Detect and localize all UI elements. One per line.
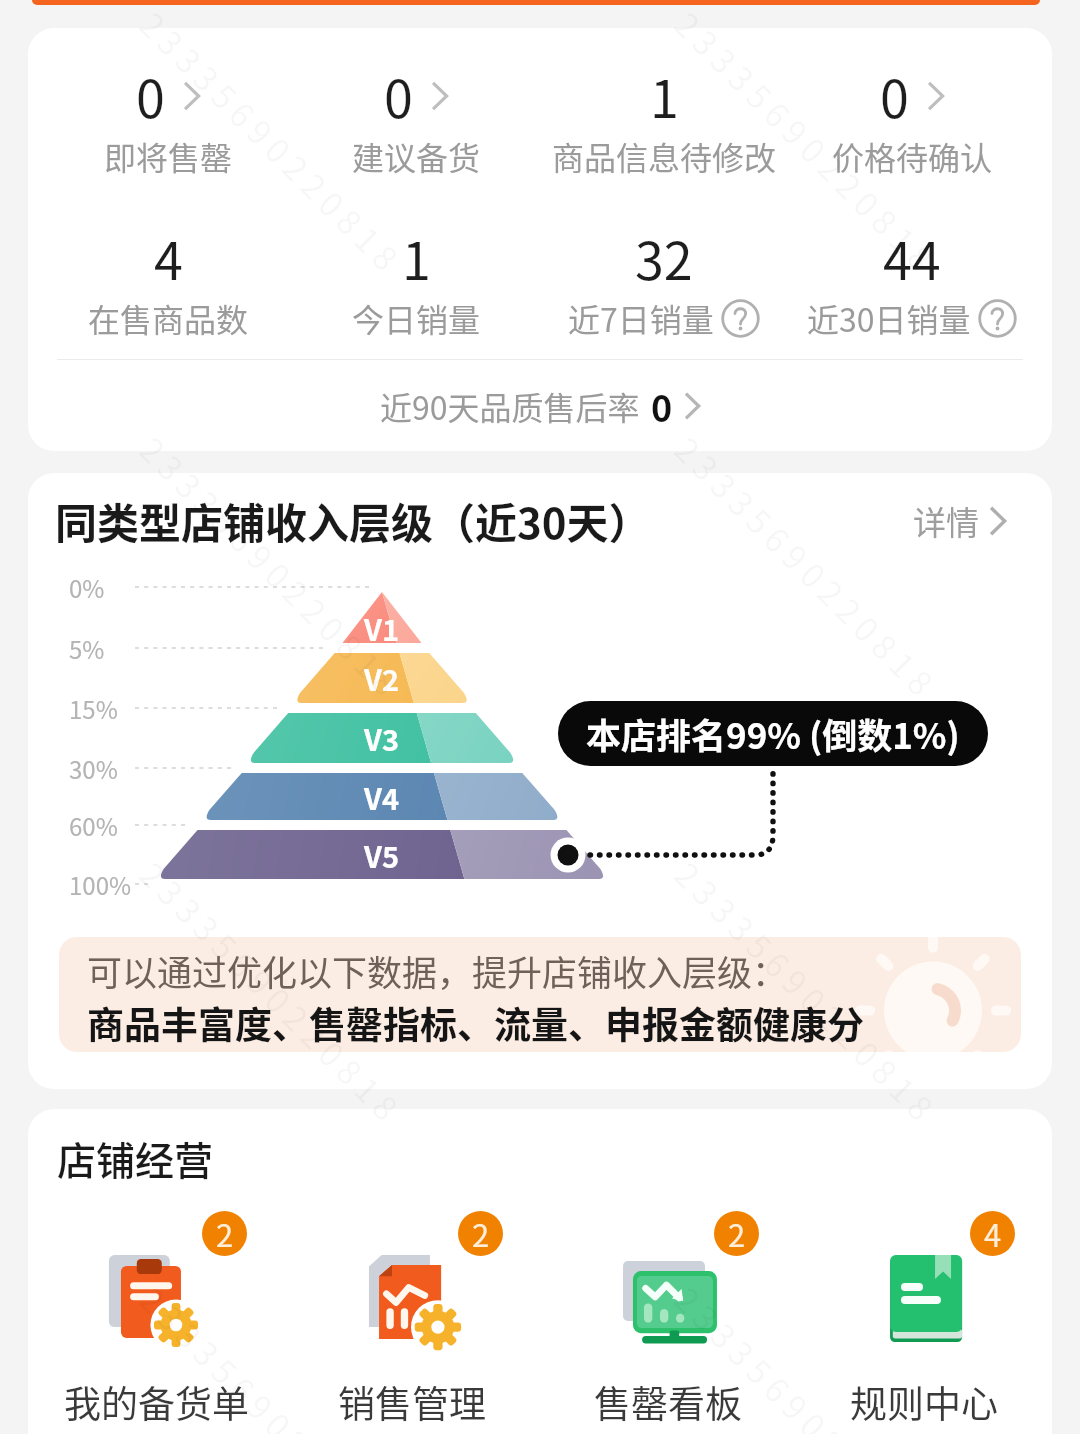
staticText: 4	[154, 220, 183, 295]
staticText: 44	[883, 220, 941, 295]
button[interactable]: 近90天品质售后率	[28, 360, 1052, 451]
staticText: 同类型店铺收入层级（近30天）	[55, 490, 651, 551]
button[interactable]: 44	[788, 220, 1036, 341]
staticText: V4	[364, 776, 400, 818]
staticText: 2	[728, 1211, 746, 1256]
staticText: V1	[364, 607, 400, 649]
staticText: V3	[364, 717, 400, 759]
staticText: 建议备货	[352, 133, 481, 179]
staticText: 5%	[69, 631, 105, 666]
button[interactable]: 详情	[909, 493, 1010, 549]
staticText: 商品信息待修改	[552, 133, 777, 179]
button[interactable]: 2	[284, 1209, 540, 1429]
staticText: 23335690220818	[130, 1275, 415, 1434]
staticText: 可以通过优化以下数据，提升店铺收入层级：	[87, 945, 788, 996]
staticText: 0%	[69, 570, 105, 605]
staticText: 0	[651, 380, 673, 432]
staticText: 23335690220818	[665, 1275, 950, 1434]
button[interactable]: 0	[788, 58, 1036, 179]
staticText: 1	[650, 58, 679, 133]
staticText: 店铺经营	[57, 1130, 214, 1186]
staticText: 0	[880, 58, 909, 133]
staticText: 60%	[69, 808, 118, 843]
staticText: 销售管理	[338, 1375, 486, 1429]
button[interactable]: 4	[44, 220, 292, 341]
staticText: 4	[984, 1211, 1002, 1256]
staticText: 32	[635, 220, 693, 295]
staticText: 1	[402, 220, 431, 295]
staticText: 100%	[69, 867, 132, 902]
staticText: 0	[136, 58, 165, 133]
staticText: 0	[384, 58, 413, 133]
staticText: 本店排名99% (倒数1%)	[586, 708, 960, 759]
button[interactable]: 1	[292, 220, 540, 341]
staticText: 详情	[913, 497, 979, 545]
staticText: 商品丰富度、售罄指标、流量、申报金额健康分	[87, 996, 864, 1050]
button[interactable]: 2	[28, 1209, 284, 1429]
staticText: V2	[364, 657, 400, 699]
staticText: 23335690220818	[130, 0, 415, 285]
staticText: 售罄看板	[594, 1375, 742, 1429]
staticText: 近90天品质售后率	[380, 383, 640, 429]
button[interactable]: 0	[292, 58, 540, 179]
staticText: 23335690220818	[130, 850, 415, 1135]
staticText: 我的备货单	[64, 1375, 249, 1429]
button[interactable]: 4	[796, 1209, 1052, 1429]
button[interactable]: 1	[540, 58, 788, 179]
staticText: 近7日销量	[568, 295, 714, 341]
button[interactable]: 32	[540, 220, 788, 341]
staticText: 30%	[69, 751, 118, 786]
staticText: 在售商品数	[88, 295, 249, 341]
staticText: 23335690220818	[665, 0, 950, 285]
staticText: V5	[364, 834, 400, 876]
staticText: 23335690220818	[665, 850, 950, 1135]
staticText: 23335690220818	[130, 425, 415, 710]
button[interactable]: 2	[540, 1209, 796, 1429]
staticText: 规则中心	[850, 1375, 998, 1429]
staticText: 近30日销量	[807, 295, 971, 341]
staticText: 2	[216, 1211, 234, 1256]
staticText: 23335690220818	[665, 425, 950, 710]
staticText: 价格待确认	[832, 133, 993, 179]
staticText: 即将售罄	[104, 133, 233, 179]
staticText: 15%	[69, 691, 118, 726]
staticText: 2	[472, 1211, 490, 1256]
staticText: 今日销量	[352, 295, 481, 341]
button[interactable]: 0	[44, 58, 292, 179]
